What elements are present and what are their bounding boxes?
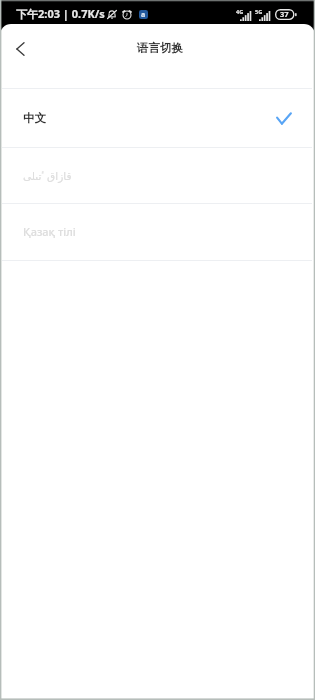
button[interactable]: قازاق ٴتىلى [0, 148, 315, 203]
button[interactable]: Back [6, 35, 34, 63]
staticText: 37 [280, 9, 289, 19]
staticText: 中文 [23, 111, 46, 125]
staticText: 下午2:03 | 0.7K/s [16, 6, 105, 21]
staticText: قازاق ٴتىلى [23, 169, 72, 183]
staticText: 4G [236, 8, 244, 15]
staticText: Қазақ тілі [23, 224, 76, 239]
staticText: 5G [255, 8, 263, 15]
button[interactable]: Қазақ тілі [0, 204, 315, 260]
staticText: a [141, 10, 146, 19]
staticText: 语言切换 [137, 41, 183, 55]
button[interactable]: 中文 [0, 89, 315, 147]
